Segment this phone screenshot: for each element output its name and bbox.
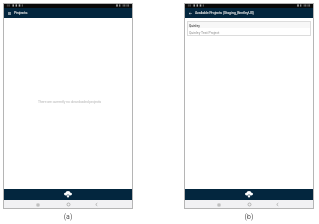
staticText: (a) (57, 213, 79, 221)
button[interactable]: Home (63, 200, 73, 209)
button[interactable]: Quinley Test Project (187, 28, 311, 36)
staticText: There are currently no downloaded projec… (38, 100, 102, 104)
staticText: Quinley Test Project (189, 31, 220, 35)
staticText: (b) (238, 213, 260, 221)
button[interactable]: Open navigation menu (6, 10, 12, 16)
staticText: Quinley (189, 24, 200, 28)
button[interactable]: Download projects (3, 189, 133, 200)
staticText: Projects (14, 11, 28, 15)
button[interactable]: Home (244, 200, 254, 209)
button[interactable]: Download projects (184, 189, 314, 200)
button[interactable]: Back (91, 200, 101, 209)
button[interactable]: Recents (214, 200, 224, 209)
staticText: Available Projects (Staging_BentleyUS) (195, 11, 254, 15)
button[interactable]: Back (187, 10, 193, 16)
button[interactable]: Recents (33, 200, 43, 209)
button[interactable]: Back (272, 200, 282, 209)
